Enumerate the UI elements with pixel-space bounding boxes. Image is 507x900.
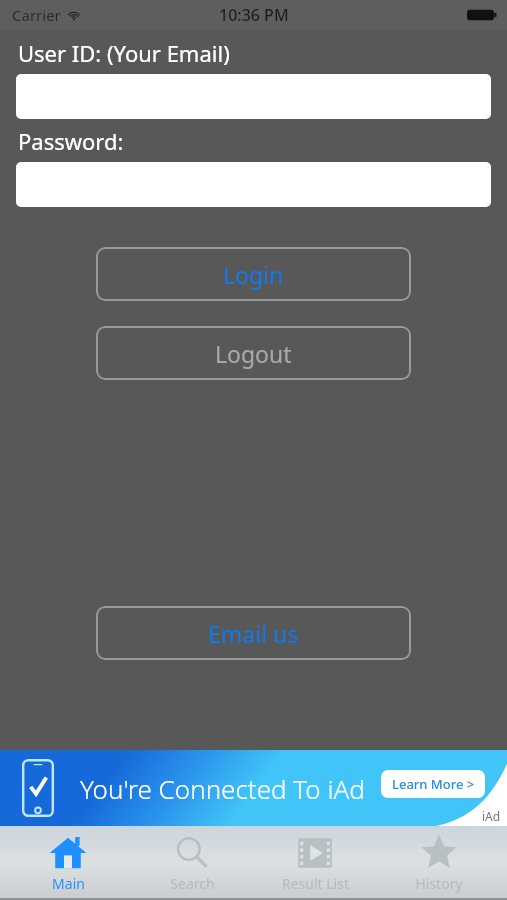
- button[interactable]: [16, 74, 491, 119]
- button[interactable]: Search: [137, 833, 247, 893]
- staticText: Password:: [18, 126, 124, 156]
- staticText: Result List: [282, 874, 349, 893]
- button[interactable]: Login: [96, 247, 411, 301]
- staticText: User ID: (Your Email): [18, 38, 230, 68]
- button[interactable]: Learn More >: [381, 770, 485, 798]
- staticText: History: [415, 874, 463, 893]
- staticText: Email us: [208, 618, 299, 649]
- staticText: Search: [170, 874, 215, 893]
- staticText: iAd: [482, 808, 501, 824]
- button[interactable]: Main: [13, 833, 123, 893]
- staticText: You're Connected To iAd: [80, 771, 365, 806]
- button[interactable]: Email us: [96, 606, 411, 660]
- staticText: Carrier: [12, 5, 61, 25]
- button[interactable]: You're Connected To iAd: [0, 750, 507, 826]
- button[interactable]: Result List: [260, 833, 370, 893]
- staticText: Learn More >: [392, 775, 475, 793]
- staticText: Main: [52, 874, 85, 893]
- button[interactable]: History: [384, 833, 494, 893]
- staticText: Logout: [215, 338, 292, 369]
- button[interactable]: Logout: [96, 326, 411, 380]
- button[interactable]: [16, 162, 491, 207]
- staticText: 10:36 PM: [219, 4, 289, 26]
- staticText: Login: [223, 259, 284, 290]
